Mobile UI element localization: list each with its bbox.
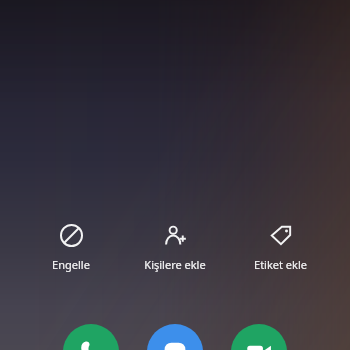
button[interactable]: Message (147, 324, 203, 350)
staticText: Engelle (52, 257, 90, 272)
staticText: Kişilere ekle (144, 257, 206, 272)
button[interactable]: Kişilere ekle (127, 218, 223, 274)
button[interactable]: Video call (231, 324, 287, 350)
button[interactable]: Etiket ekle (232, 218, 328, 274)
button[interactable]: Engelle (23, 218, 119, 274)
staticText: Etiket ekle (254, 257, 307, 272)
button[interactable]: Call (63, 324, 119, 350)
